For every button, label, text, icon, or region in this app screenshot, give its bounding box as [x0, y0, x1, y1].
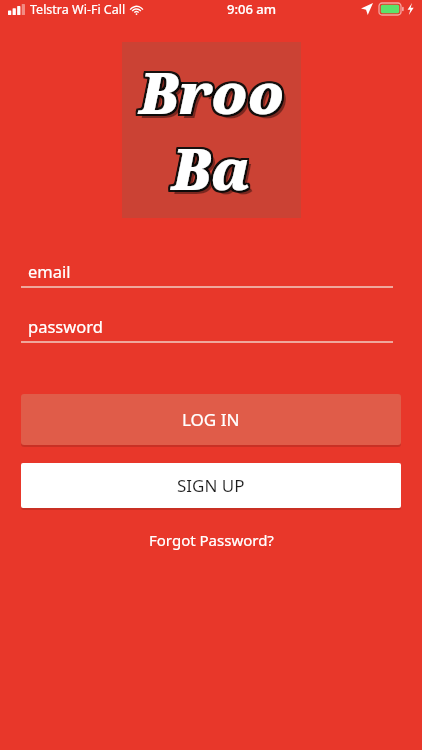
button[interactable]: Forgot Password?	[137, 525, 286, 555]
staticText: BrooBa	[122, 55, 301, 207]
staticText: BrooBa	[123, 53, 302, 205]
staticText: BrooBa	[123, 56, 302, 208]
staticText: BrooBa	[126, 58, 305, 210]
staticText: BrooBa	[123, 54, 302, 206]
button[interactable]: LOG IN	[21, 394, 401, 445]
button[interactable]: password	[21, 310, 393, 341]
staticText: Telstra Wi-Fi Call	[30, 1, 126, 18]
staticText: 9:06 am	[227, 0, 276, 18]
staticText: BrooBa	[120, 52, 299, 204]
staticText: BrooBa	[120, 54, 299, 206]
staticText: BrooBa	[120, 56, 299, 208]
staticText: BrooBa	[122, 53, 301, 205]
staticText: BrooBa	[123, 55, 302, 207]
staticText: BrooBa	[123, 52, 302, 204]
staticText: BrooBa	[120, 53, 299, 205]
staticText: BrooBa	[124, 54, 303, 206]
staticText: BrooBa	[124, 56, 303, 208]
button[interactable]: SIGN UP	[21, 463, 401, 508]
staticText: BrooBa	[121, 52, 300, 204]
staticText: BrooBa	[122, 54, 301, 206]
staticText: BrooBa	[124, 55, 303, 207]
staticText: BrooBa	[120, 55, 299, 207]
button[interactable]: email	[21, 255, 393, 286]
staticText: BrooBa	[122, 56, 301, 208]
staticText: BrooBa	[121, 55, 300, 207]
staticText: SIGN UP	[177, 474, 245, 497]
staticText: BrooBa	[124, 53, 303, 205]
staticText: BrooBa	[122, 52, 301, 204]
staticText: password	[28, 315, 103, 337]
staticText: BrooBa	[121, 54, 300, 206]
staticText: LOG IN	[182, 408, 240, 431]
staticText: email	[28, 260, 71, 282]
staticText: BrooBa	[124, 52, 303, 204]
staticText: BrooBa	[121, 53, 300, 205]
staticText: BrooBa	[121, 56, 300, 208]
staticText: Forgot Password?	[149, 530, 274, 550]
